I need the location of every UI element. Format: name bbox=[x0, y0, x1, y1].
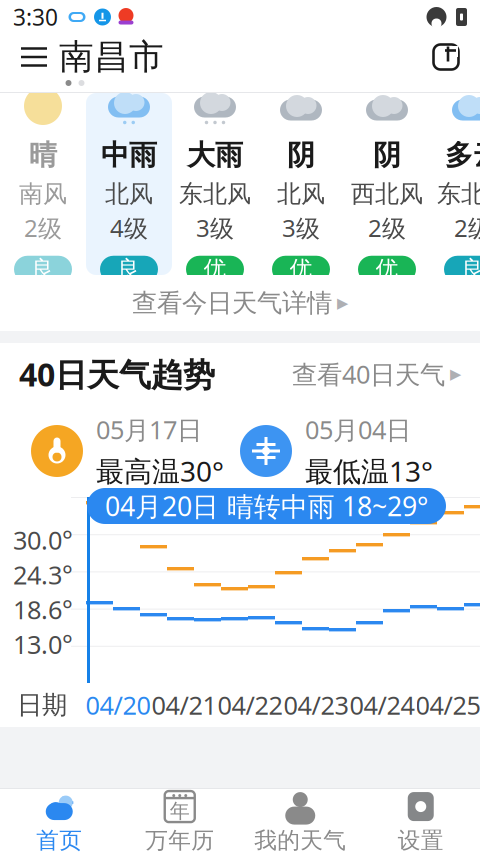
staticText: 优 bbox=[289, 255, 312, 283]
button[interactable]: 查看今日天气详情 bbox=[0, 275, 480, 331]
staticText: 2级 bbox=[24, 212, 62, 244]
button[interactable]: 年 bbox=[119, 789, 240, 855]
staticText: 最高温30° bbox=[96, 452, 224, 489]
staticText: 3级 bbox=[282, 212, 320, 244]
staticText: 阴 bbox=[373, 138, 401, 172]
staticText: 阴 bbox=[287, 138, 315, 172]
staticText: 我的天气 bbox=[254, 827, 346, 854]
staticText: ▶ bbox=[450, 366, 461, 382]
staticText: 东北风 bbox=[179, 179, 251, 209]
staticText: 04/21 bbox=[151, 688, 216, 722]
staticText: 40日天气趋势 bbox=[19, 353, 215, 395]
staticText: 4级 bbox=[110, 212, 148, 244]
staticText: 南昌市 bbox=[59, 36, 164, 78]
button[interactable]: 中雨 bbox=[86, 93, 172, 275]
staticText: 查看今日天气详情 bbox=[132, 287, 332, 318]
staticText: 13.0° bbox=[13, 627, 73, 661]
staticText: 西北风 bbox=[351, 179, 423, 209]
staticText: 首页 bbox=[36, 827, 82, 854]
staticText: 05月04日 bbox=[305, 413, 411, 446]
staticText: 04/22 bbox=[217, 688, 282, 722]
button[interactable]: 分享 bbox=[423, 34, 469, 80]
button[interactable]: 晴 bbox=[0, 93, 86, 275]
staticText: 查看40日天气 bbox=[292, 357, 445, 391]
staticText: 设置 bbox=[398, 827, 444, 854]
staticText: 南风 bbox=[19, 179, 67, 209]
staticText: 良 bbox=[461, 255, 480, 283]
staticText: 大雨 bbox=[187, 138, 243, 172]
staticText: 2级 bbox=[368, 212, 406, 244]
button[interactable]: 大雨 bbox=[172, 93, 258, 275]
staticText: 日期 bbox=[17, 689, 67, 720]
button[interactable]: 多云 bbox=[430, 93, 480, 275]
button[interactable]: 首页 bbox=[0, 789, 119, 855]
button[interactable]: 我的天气 bbox=[240, 789, 360, 855]
button[interactable]: 菜单 bbox=[11, 34, 57, 80]
staticText: 优 bbox=[203, 255, 226, 283]
staticText: 东北风 bbox=[437, 179, 480, 209]
button[interactable]: 南昌市 bbox=[57, 34, 164, 80]
staticText: 晴 bbox=[29, 138, 57, 172]
staticText: 30.0° bbox=[13, 523, 73, 557]
button[interactable]: 阴 bbox=[344, 93, 430, 275]
staticText: 3:30 bbox=[13, 2, 58, 32]
staticText: 中雨 bbox=[101, 138, 157, 172]
staticText: 24.3° bbox=[13, 558, 73, 591]
staticText: 04/25 bbox=[415, 688, 480, 722]
staticText: 04月20日 晴转中雨 18~29° bbox=[105, 488, 428, 524]
staticText: 北风 bbox=[105, 179, 153, 209]
staticText: 最低温13° bbox=[305, 452, 433, 489]
staticText: 北风 bbox=[277, 179, 325, 209]
staticText: 18.6° bbox=[13, 593, 73, 626]
staticText: 良 bbox=[31, 255, 54, 283]
staticText: 多云 bbox=[445, 138, 480, 172]
staticText: 年 bbox=[170, 799, 190, 823]
button[interactable]: 设置 bbox=[360, 789, 480, 855]
staticText: 04/23 bbox=[283, 688, 348, 722]
staticText: 优 bbox=[375, 255, 398, 283]
button[interactable]: 05月17日 bbox=[0, 413, 240, 489]
staticText: 05月17日 bbox=[96, 413, 202, 446]
staticText: ▶ bbox=[337, 295, 348, 311]
staticText: 良 bbox=[117, 255, 140, 283]
button[interactable]: 查看40日天气 bbox=[292, 352, 461, 396]
staticText: 3级 bbox=[196, 212, 234, 244]
button[interactable]: 05月04日 bbox=[240, 413, 480, 489]
button[interactable]: 阴 bbox=[258, 93, 344, 275]
staticText: 万年历 bbox=[145, 827, 214, 854]
staticText: 2级 bbox=[454, 212, 480, 244]
staticText: 04/20 bbox=[85, 688, 150, 722]
staticText: 04/24 bbox=[349, 688, 414, 722]
